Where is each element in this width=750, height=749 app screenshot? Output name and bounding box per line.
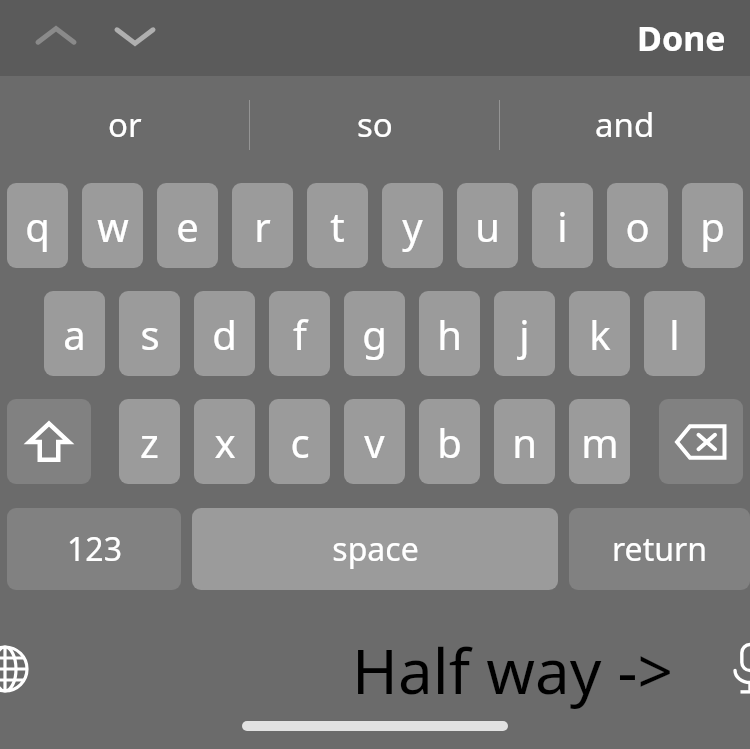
button[interactable]: b	[419, 399, 480, 484]
staticText: j	[519, 307, 530, 361]
staticText: l	[669, 307, 680, 361]
button[interactable]: 123	[7, 508, 181, 590]
button[interactable]: p	[682, 183, 743, 268]
staticText: v	[364, 415, 385, 469]
staticText: i	[557, 199, 568, 253]
button[interactable]: c	[269, 399, 330, 484]
button[interactable]: t	[307, 183, 368, 268]
button[interactable]: n	[494, 399, 555, 484]
button[interactable]: m	[569, 399, 630, 484]
button[interactable]: u	[457, 183, 518, 268]
staticText: e	[176, 199, 199, 253]
button[interactable]: x	[194, 399, 255, 484]
button[interactable]: so	[255, 76, 495, 172]
staticText: p	[700, 199, 725, 253]
staticText: r	[254, 199, 271, 253]
staticText: n	[512, 415, 537, 469]
staticText: y	[402, 199, 423, 253]
button[interactable]: j	[494, 291, 555, 376]
button[interactable]: d	[194, 291, 255, 376]
staticText: and	[595, 102, 655, 147]
button[interactable]: z	[119, 399, 180, 484]
button[interactable]: Done	[631, 7, 732, 69]
button[interactable]: q	[7, 183, 68, 268]
button[interactable]: Next field	[107, 8, 163, 64]
staticText: u	[475, 199, 500, 253]
staticText: h	[437, 307, 462, 361]
staticText: b	[437, 415, 462, 469]
staticText: o	[625, 199, 650, 253]
button[interactable]: w	[82, 183, 143, 268]
staticText: m	[581, 415, 619, 469]
staticText: Done	[637, 15, 726, 61]
button[interactable]: g	[344, 291, 405, 376]
staticText: c	[290, 415, 310, 469]
staticText: or	[108, 102, 142, 147]
button[interactable]: Dictation	[722, 638, 750, 700]
staticText: t	[330, 199, 345, 253]
button[interactable]: Change keyboard	[0, 640, 34, 698]
staticText: f	[293, 307, 307, 361]
button[interactable]: and	[505, 76, 745, 172]
staticText: z	[140, 415, 159, 469]
staticText: Half way ->	[352, 628, 673, 712]
staticText: g	[362, 307, 387, 361]
button[interactable]: i	[532, 183, 593, 268]
button[interactable]: r	[232, 183, 293, 268]
button[interactable]: a	[44, 291, 105, 376]
button[interactable]: space	[192, 508, 558, 590]
button[interactable]: Shift	[7, 399, 91, 484]
staticText: space	[332, 527, 419, 571]
staticText: a	[63, 307, 86, 361]
button[interactable]: or	[5, 76, 245, 172]
button[interactable]: h	[419, 291, 480, 376]
staticText: s	[140, 307, 160, 361]
button[interactable]: Half way ->	[352, 628, 673, 712]
button[interactable]: k	[569, 291, 630, 376]
staticText: so	[357, 102, 393, 147]
button[interactable]: Previous field	[28, 8, 84, 64]
button[interactable]: e	[157, 183, 218, 268]
button[interactable]: l	[644, 291, 705, 376]
button[interactable]: v	[344, 399, 405, 484]
staticText: d	[212, 307, 237, 361]
button[interactable]: return	[569, 508, 750, 590]
staticText: k	[589, 307, 611, 361]
staticText: q	[25, 199, 50, 253]
staticText: w	[97, 199, 129, 253]
staticText: 123	[67, 527, 122, 571]
button[interactable]: o	[607, 183, 668, 268]
button[interactable]: f	[269, 291, 330, 376]
staticText: x	[214, 415, 236, 469]
button[interactable]: y	[382, 183, 443, 268]
button[interactable]: Backspace	[659, 399, 743, 484]
staticText: return	[612, 527, 707, 571]
button[interactable]: s	[119, 291, 180, 376]
